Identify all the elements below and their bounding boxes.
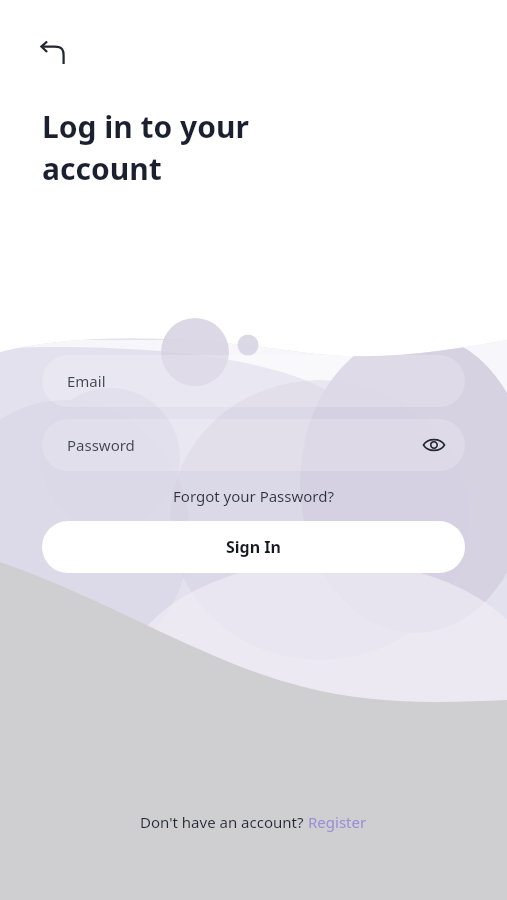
staticText: Don't have an account?	[140, 812, 308, 832]
button[interactable]: Forgot your Password?	[167, 483, 340, 509]
staticText: Password	[67, 435, 135, 455]
button[interactable]: Email	[42, 355, 465, 407]
staticText: Email	[67, 371, 106, 391]
staticText: Sign In	[226, 536, 281, 558]
staticText: Register	[308, 812, 367, 832]
staticText: Forgot your Password?	[173, 486, 334, 506]
button[interactable]: Show password	[415, 426, 453, 464]
button[interactable]: Sign In	[42, 521, 465, 573]
button[interactable]: Password	[42, 419, 465, 471]
button[interactable]: Back	[30, 28, 78, 76]
staticText: Log in to your account	[42, 106, 372, 189]
button[interactable]: Register	[308, 812, 367, 832]
